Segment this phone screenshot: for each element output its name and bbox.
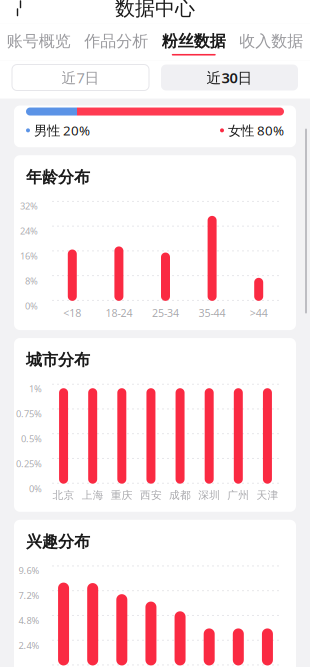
staticText: 24%	[20, 225, 38, 237]
staticText: 32%	[20, 200, 38, 212]
button[interactable]: Back	[0, 0, 38, 23]
staticText: 城市分布	[26, 350, 90, 370]
staticText: 作品分析	[84, 31, 148, 51]
button[interactable]: 近7日	[12, 64, 149, 90]
staticText: 账号概览	[7, 31, 71, 51]
staticText: <18	[63, 306, 81, 320]
staticText: 数据中心	[115, 0, 195, 21]
staticText: 近30日	[206, 68, 252, 87]
staticText: 天津	[256, 489, 278, 502]
staticText: 0.5%	[21, 432, 42, 445]
button[interactable]: 近30日	[161, 64, 298, 90]
staticText: 女性 80%	[224, 121, 284, 139]
staticText: 收入数据	[239, 31, 303, 51]
staticText: 上海	[82, 489, 104, 502]
staticText: 0.75%	[16, 407, 42, 420]
staticText: 兴趣分布	[26, 532, 90, 551]
staticText: >44	[250, 306, 268, 320]
staticText: 成都	[169, 489, 191, 502]
staticText: 粉丝数据	[162, 31, 226, 51]
staticText: 25-34	[152, 306, 179, 320]
staticText: 7.2%	[18, 589, 39, 602]
staticText: 北京	[53, 489, 75, 502]
staticText: 重庆	[111, 489, 133, 502]
button[interactable]: 收入数据	[232, 23, 310, 61]
staticText: 2.4%	[18, 639, 39, 652]
staticText: 年龄分布	[26, 167, 90, 187]
staticText: 8%	[25, 275, 38, 287]
staticText: 35-44	[199, 306, 226, 320]
staticText: 广州	[227, 489, 249, 502]
button[interactable]: 作品分析	[77, 23, 155, 61]
staticText: 18-24	[105, 306, 132, 320]
staticText: 男性 20%	[30, 121, 90, 139]
staticText: 0%	[29, 482, 42, 495]
staticText: 1%	[29, 382, 42, 395]
staticText: 西安	[140, 489, 162, 502]
button[interactable]: 粉丝数据	[155, 23, 232, 61]
staticText: 9.6%	[18, 564, 39, 577]
staticText: 0.25%	[16, 457, 42, 470]
button[interactable]: 账号概览	[0, 23, 77, 61]
staticText: 4.8%	[18, 614, 39, 627]
staticText: 0%	[25, 300, 38, 312]
staticText: 近7日	[61, 68, 99, 87]
staticText: 深圳	[198, 489, 220, 502]
staticText: 16%	[20, 250, 38, 262]
